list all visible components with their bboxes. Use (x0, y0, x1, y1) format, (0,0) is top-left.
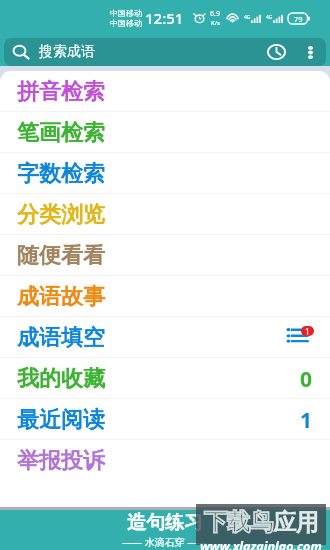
button[interactable]: 笔画检索 (0, 112, 330, 152)
staticText: 成语故事 (17, 283, 105, 311)
staticText: 随便看看 (17, 242, 105, 270)
staticText: 6.9 (210, 9, 220, 19)
button[interactable]: 成语填空 (0, 317, 330, 357)
staticText: 应用 (273, 508, 319, 537)
button[interactable]: 更多选项 (294, 38, 326, 66)
staticText: 我的收藏 (17, 365, 105, 393)
staticText: K/s (211, 19, 220, 27)
button[interactable]: 最近阅读 (0, 399, 330, 439)
button[interactable]: 搜索历史 (258, 38, 294, 66)
staticText: 0 (300, 365, 313, 394)
button[interactable]: 我的收藏 (0, 358, 330, 398)
staticText: 1 (305, 326, 310, 336)
button[interactable]: 字数检索 (0, 153, 330, 193)
button[interactable]: 随便看看 (0, 235, 330, 275)
staticText: 造句练习 (127, 511, 203, 535)
staticText: 分类浏览 (17, 201, 105, 229)
staticText: 中国移动 (110, 8, 142, 18)
button[interactable]: 成语故事 (0, 276, 330, 316)
staticText: 中国移动 (110, 18, 142, 28)
staticText: 字数检索 (17, 160, 105, 188)
staticText: www.xlazainlao.com (200, 538, 322, 550)
staticText: 4G (266, 14, 273, 21)
button[interactable]: 分类浏览 (0, 194, 330, 234)
button[interactable]: 拼音检索 (0, 71, 330, 111)
staticText: 12:51 (145, 8, 184, 28)
staticText: 举报投诉 (17, 447, 105, 475)
staticText: 成语填空 (17, 324, 105, 352)
staticText: —— 水滴石穿 —— (122, 535, 208, 549)
staticText: 搜索成语 (39, 43, 95, 61)
staticText: 1 (300, 406, 313, 435)
button[interactable]: 搜索成语 (4, 38, 326, 66)
button[interactable]: 举报投诉 (0, 440, 330, 480)
staticText: 拼音检索 (17, 78, 105, 106)
staticText: 下载鸟 (204, 508, 273, 537)
staticText: 笔画检索 (17, 119, 105, 147)
button[interactable]: 造句练习 (0, 510, 330, 550)
staticText: 79 (294, 14, 303, 24)
staticText: 最近阅读 (17, 406, 105, 434)
staticText: 4G (244, 14, 251, 21)
